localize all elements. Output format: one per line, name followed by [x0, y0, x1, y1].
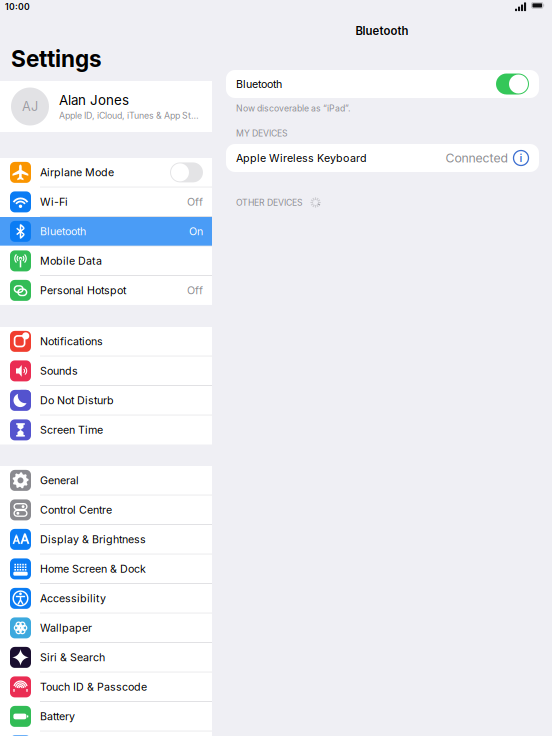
- staticText: Connected: [445, 151, 508, 165]
- staticText: Screen Time: [40, 423, 103, 436]
- staticText: Touch ID & Passcode: [40, 680, 147, 693]
- staticText: Home Screen & Dock: [40, 562, 146, 575]
- staticText: Accessibility: [40, 592, 106, 605]
- staticText: Personal Hotspot: [40, 284, 126, 297]
- button[interactable]: Wi-Fi: [0, 187, 212, 216]
- staticText: Mobile Data: [40, 254, 102, 267]
- button[interactable]: Sounds: [0, 356, 212, 385]
- staticText: Apple Wireless Keyboard: [236, 151, 367, 164]
- staticText: 10:00: [5, 1, 30, 12]
- staticText: OTHER DEVICES: [236, 197, 303, 208]
- button[interactable]: Mobile Data: [0, 246, 212, 275]
- button[interactable]: Home Screen & Dock: [0, 554, 212, 583]
- staticText: MY DEVICES: [236, 128, 288, 138]
- staticText: Now discoverable as “iPad”.: [236, 103, 350, 113]
- staticText: Wallpaper: [40, 621, 92, 634]
- button[interactable]: Display & Brightness: [0, 525, 212, 554]
- button[interactable]: Bluetooth: [0, 217, 212, 246]
- staticText: Off: [187, 284, 203, 297]
- staticText: Do Not Disturb: [40, 394, 114, 407]
- button[interactable]: Wallpaper: [0, 613, 212, 642]
- button[interactable]: Notifications: [0, 327, 212, 356]
- button[interactable]: Touch ID & Passcode: [0, 672, 212, 701]
- staticText: Sounds: [40, 364, 78, 377]
- button[interactable]: Apple Wireless Keyboard: [226, 144, 539, 172]
- button[interactable]: General: [0, 466, 212, 495]
- staticText: Off: [187, 195, 203, 208]
- button[interactable]: Accessibility: [0, 584, 212, 613]
- staticText: Battery: [40, 710, 75, 723]
- staticText: Settings: [11, 45, 102, 72]
- button[interactable]: Control Centre: [0, 495, 212, 524]
- button[interactable]: Siri & Search: [0, 643, 212, 672]
- button[interactable]: Bluetooth: [226, 70, 539, 98]
- button[interactable]: Personal Hotspot: [0, 276, 212, 305]
- staticText: Apple ID, iCloud, iTunes & App St…: [59, 110, 199, 121]
- staticText: Display & Brightness: [40, 533, 146, 546]
- staticText: Alan Jones: [59, 92, 129, 108]
- staticText: Notifications: [40, 335, 103, 348]
- staticText: i: [519, 151, 522, 164]
- button[interactable]: Screen Time: [0, 415, 212, 444]
- staticText: Bluetooth: [236, 77, 282, 90]
- staticText: Bluetooth: [355, 24, 408, 38]
- staticText: Control Centre: [40, 503, 112, 516]
- staticText: Siri & Search: [40, 651, 105, 664]
- staticText: On: [189, 225, 203, 238]
- button[interactable]: Privacy: [0, 731, 212, 736]
- staticText: General: [40, 474, 79, 487]
- button[interactable]: AJ: [0, 81, 212, 132]
- staticText: Airplane Mode: [40, 166, 114, 179]
- button[interactable]: Airplane Mode: [0, 158, 212, 187]
- button[interactable]: Do Not Disturb: [0, 386, 212, 415]
- button[interactable]: Battery: [0, 702, 212, 731]
- staticText: Wi-Fi: [40, 195, 68, 208]
- staticText: AJ: [22, 99, 38, 114]
- staticText: Bluetooth: [40, 225, 86, 238]
